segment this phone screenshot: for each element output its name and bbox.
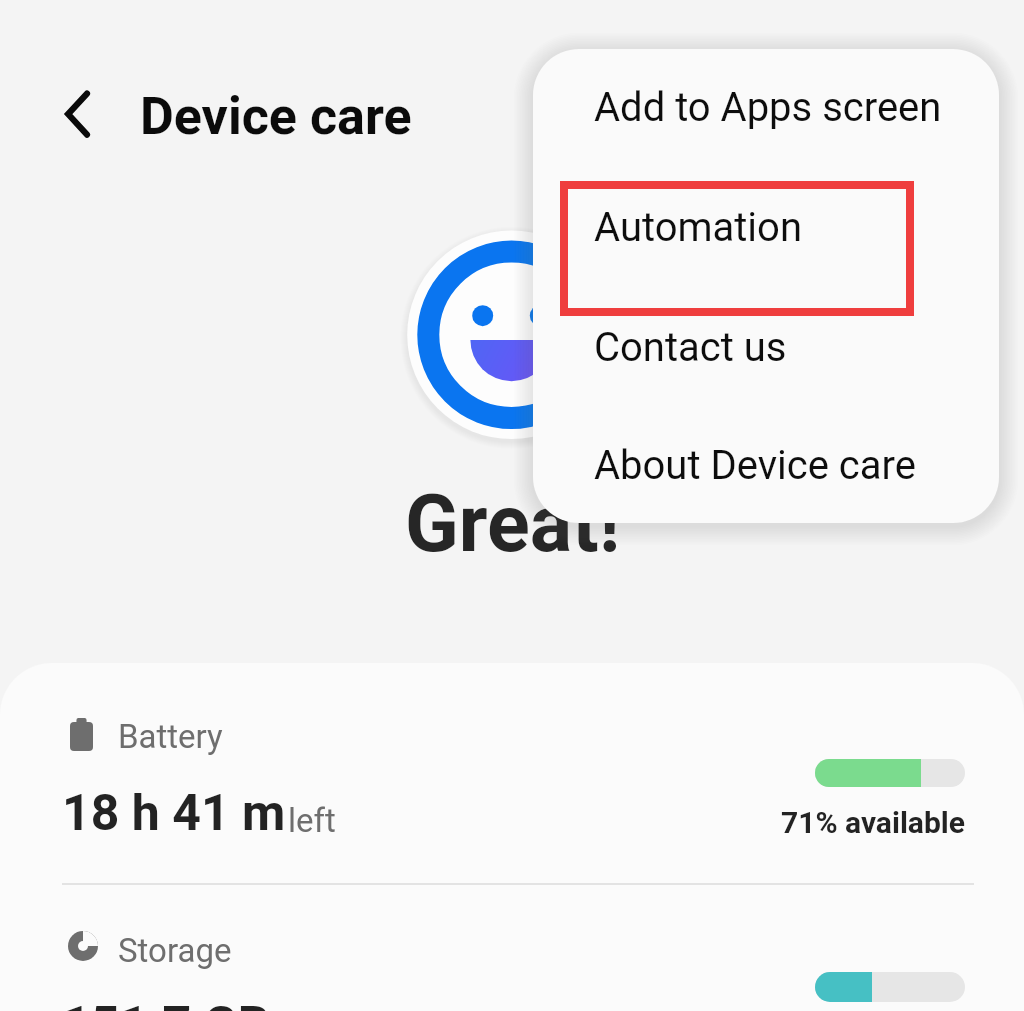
button[interactable]: About Device care [533, 407, 999, 523]
staticText: About Device care [594, 442, 916, 489]
staticText: Storage [118, 931, 232, 970]
staticText: Great! [405, 478, 621, 571]
staticText: 71% available [781, 805, 965, 840]
staticText: 18 h 41 m [62, 784, 286, 843]
button[interactable]: Automation [533, 167, 999, 287]
staticText: Battery [118, 717, 223, 756]
button[interactable]: Contact us [533, 287, 999, 407]
button[interactable]: Battery [0, 663, 1024, 883]
button[interactable]: Back [48, 76, 104, 152]
staticText: Add to Apps screen [594, 84, 942, 131]
button[interactable]: Storage [0, 885, 1024, 1011]
staticText: Automation [594, 204, 802, 251]
staticText: 151.7 GB [62, 996, 270, 1011]
staticText: Device care [140, 86, 412, 147]
staticText: Contact us [594, 324, 787, 371]
button[interactable]: Add to Apps screen [533, 49, 999, 167]
staticText: left [288, 801, 336, 840]
